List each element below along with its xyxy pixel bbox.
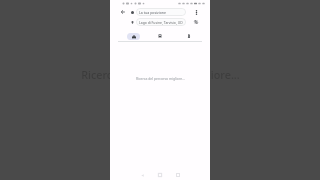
button[interactable]: Back: [119, 8, 127, 16]
button[interactable]: Swap start and destination: [192, 18, 200, 26]
button[interactable]: Home: [156, 171, 164, 179]
staticText: Ricerca del percorso migliore...: [136, 76, 185, 81]
staticText: Lago di Fusine, Tarvisio, UD: [139, 20, 183, 25]
button[interactable]: Public transport: [156, 32, 164, 40]
button[interactable]: Walking: [185, 32, 193, 40]
button[interactable]: Back: [138, 171, 146, 179]
staticText: Ricerca del percorso migliore...: [81, 67, 240, 82]
button[interactable]: More options: [192, 8, 200, 16]
button[interactable]: Recent apps: [174, 171, 182, 179]
button[interactable]: Lago di Fusine, Tarvisio, UD: [136, 18, 186, 26]
button[interactable]: Driving: [127, 33, 140, 40]
staticText: La tua posizione: [139, 10, 167, 15]
button[interactable]: La tua posizione: [136, 8, 186, 16]
